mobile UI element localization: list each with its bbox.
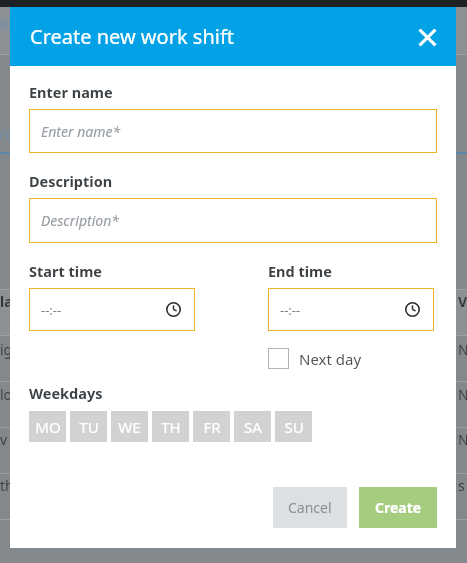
button[interactable]: Close (410, 20, 444, 54)
staticText: Cancel (288, 498, 332, 517)
staticText: MO (35, 417, 61, 437)
staticText: TU (79, 417, 99, 437)
staticText: FR (203, 417, 221, 437)
staticText: Description (29, 171, 113, 191)
staticText: Enter name* (41, 122, 121, 141)
staticText: N (458, 430, 467, 449)
button[interactable]: --:-- (29, 288, 195, 331)
staticText: N (458, 385, 467, 404)
staticText: Description* (41, 211, 119, 230)
staticText: th (0, 476, 14, 495)
staticText: s (458, 476, 465, 495)
button[interactable]: Enter name* (29, 109, 437, 153)
staticText: SU (284, 417, 304, 437)
button[interactable]: TU (70, 411, 107, 442)
staticText: Start time (29, 261, 102, 281)
staticText: WE (118, 417, 141, 437)
button[interactable]: Next day (268, 348, 362, 369)
staticText: er (0, 14, 14, 33)
staticText: N (458, 340, 467, 359)
button[interactable]: FR (193, 411, 230, 442)
staticText: Create (375, 498, 422, 517)
button[interactable]: SA (234, 411, 271, 442)
staticText: ig (0, 340, 13, 359)
staticText: TH (161, 417, 181, 437)
staticText: v (0, 430, 8, 449)
staticText: --:-- (280, 301, 301, 319)
button[interactable]: TH (152, 411, 189, 442)
staticText: Next day (299, 349, 362, 369)
staticText: lo (0, 385, 13, 404)
button[interactable]: WE (111, 411, 148, 442)
button[interactable]: SU (275, 411, 312, 442)
staticText: SA (244, 417, 262, 437)
staticText: Weekdays (29, 383, 103, 403)
staticText: Create new work shift (30, 23, 235, 50)
button[interactable]: MO (29, 411, 66, 442)
staticText: /o (0, 124, 14, 143)
staticText: --:-- (41, 301, 62, 319)
button[interactable]: Description* (29, 198, 437, 243)
button[interactable]: Create (359, 487, 437, 528)
button[interactable]: Cancel (273, 487, 347, 528)
staticText: la (0, 292, 13, 311)
button[interactable]: --:-- (268, 288, 434, 331)
staticText: End time (268, 261, 332, 281)
staticText: V (458, 292, 467, 311)
staticText: Enter name (29, 82, 113, 102)
